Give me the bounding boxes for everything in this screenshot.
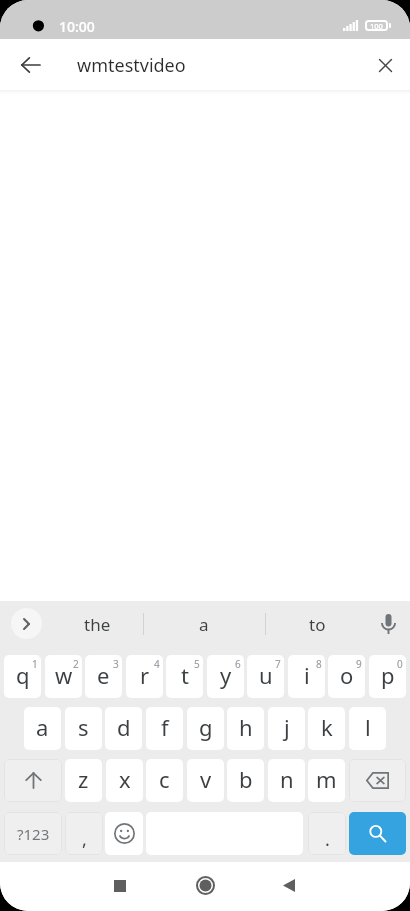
button[interactable]: t	[166, 655, 203, 698]
staticText: v	[200, 764, 212, 794]
button[interactable]: w	[45, 655, 82, 698]
button[interactable]: n	[268, 759, 305, 802]
staticText: l	[365, 712, 371, 742]
staticText: j	[284, 712, 290, 742]
staticText: r	[140, 660, 150, 690]
staticText: to	[309, 613, 326, 636]
staticText: a	[36, 712, 49, 742]
staticText: 100	[370, 21, 383, 31]
button[interactable]: y	[207, 655, 244, 698]
button[interactable]: ,	[65, 812, 103, 855]
staticText: 8	[316, 657, 322, 671]
button[interactable]: s	[65, 707, 102, 750]
button[interactable]: ?123	[4, 812, 62, 855]
button[interactable]: z	[65, 759, 102, 802]
button[interactable]: the	[52, 601, 143, 647]
staticText: 2	[73, 657, 79, 671]
button[interactable]: i	[288, 655, 325, 698]
staticText: e	[97, 660, 110, 690]
staticText: 5	[194, 657, 200, 671]
button[interactable]: j	[268, 707, 305, 750]
button[interactable]: p	[369, 655, 406, 698]
button[interactable]: m	[308, 759, 345, 802]
staticText: 4	[154, 657, 160, 671]
button[interactable]: x	[106, 759, 143, 802]
staticText: n	[280, 764, 294, 794]
staticText: m	[316, 764, 337, 794]
staticText: u	[259, 660, 273, 690]
staticText: 7	[275, 657, 281, 671]
staticText: c	[159, 764, 170, 794]
staticText: b	[239, 764, 253, 794]
button[interactable]: Clear search	[363, 43, 407, 87]
staticText: w	[55, 660, 73, 690]
staticText: q	[16, 660, 30, 690]
button[interactable]: Back	[8, 43, 52, 87]
staticText: 1	[32, 657, 38, 671]
staticText: z	[78, 764, 89, 794]
staticText: ,	[82, 827, 87, 852]
staticText: h	[239, 712, 253, 742]
button[interactable]: to	[265, 601, 370, 647]
staticText: y	[220, 660, 232, 690]
button[interactable]: l	[349, 707, 386, 750]
button[interactable]: k	[308, 707, 345, 750]
button[interactable]: h	[227, 707, 264, 750]
staticText: o	[340, 660, 354, 690]
staticText: the	[84, 613, 111, 636]
button[interactable]: Emoji	[105, 812, 143, 855]
staticText: 10:00	[59, 17, 95, 36]
button[interactable]: Search	[349, 812, 406, 855]
button[interactable]: Backspace	[349, 759, 406, 802]
staticText: i	[304, 660, 310, 690]
button[interactable]: v	[187, 759, 224, 802]
button[interactable]: Home	[183, 861, 227, 910]
staticText: ?123	[17, 824, 50, 844]
button[interactable]: d	[105, 707, 142, 750]
button[interactable]: a	[24, 707, 61, 750]
button[interactable]: Shift	[4, 759, 62, 802]
button[interactable]: Back	[267, 861, 311, 910]
staticText: s	[78, 712, 89, 742]
button[interactable]: b	[227, 759, 264, 802]
staticText: wmtestvideo	[77, 53, 186, 78]
button[interactable]: g	[187, 707, 224, 750]
staticText: p	[381, 660, 395, 690]
button[interactable]: e	[85, 655, 122, 698]
staticText: 9	[356, 657, 362, 671]
button[interactable]: More suggestions	[11, 608, 42, 639]
staticText: k	[321, 712, 333, 742]
button[interactable]: u	[247, 655, 284, 698]
button[interactable]: Voice input	[372, 607, 405, 641]
button[interactable]: .	[308, 812, 346, 855]
button[interactable]: q	[4, 655, 41, 698]
button[interactable]: a	[143, 601, 265, 647]
button[interactable]: o	[328, 655, 365, 698]
button[interactable]: f	[146, 707, 183, 750]
staticText: g	[199, 712, 213, 742]
staticText: a	[199, 613, 209, 636]
staticText: d	[117, 712, 131, 742]
staticText: 6	[235, 657, 241, 671]
staticText: .	[325, 827, 330, 852]
staticText: 0	[397, 657, 403, 671]
staticText: f	[161, 712, 169, 742]
button[interactable]: r	[126, 655, 163, 698]
button[interactable]: c	[146, 759, 183, 802]
staticText: 3	[113, 657, 119, 671]
staticText: t	[181, 660, 189, 690]
button[interactable]: Recent apps	[98, 861, 142, 910]
staticText: x	[119, 764, 131, 794]
